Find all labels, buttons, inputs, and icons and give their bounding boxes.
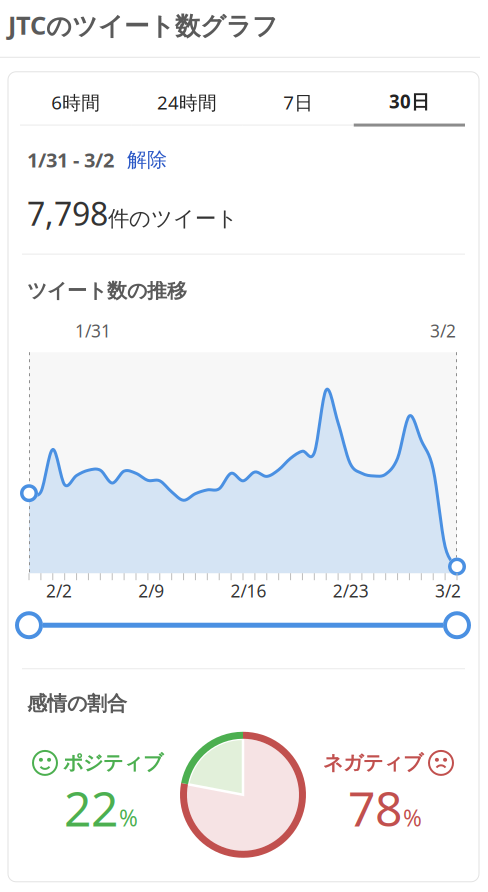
staticText: 3/2 bbox=[430, 319, 456, 342]
button[interactable]: 6時間 bbox=[20, 73, 131, 126]
staticText: JTCのツイート数グラフ bbox=[8, 8, 278, 42]
button[interactable]: 7日 bbox=[242, 73, 354, 126]
staticText: 1/31 bbox=[75, 319, 111, 342]
staticText: 件のツイート bbox=[108, 206, 238, 232]
staticText: 7日 bbox=[283, 90, 313, 115]
staticText: 感情の割合 bbox=[27, 691, 127, 716]
staticText: ネガティブ bbox=[323, 751, 423, 775]
staticText: 1/31 - 3/2 bbox=[27, 147, 114, 173]
staticText: 22 bbox=[64, 776, 118, 840]
staticText: 2/2 bbox=[46, 579, 72, 602]
button[interactable]: Range start bbox=[15, 611, 43, 639]
staticText: 78 bbox=[348, 776, 402, 840]
button[interactable]: 24時間 bbox=[131, 73, 242, 126]
staticText: ポジティブ bbox=[63, 751, 163, 775]
staticText: % bbox=[119, 803, 138, 833]
staticText: ツイート数の推移 bbox=[27, 279, 187, 303]
staticText: 24時間 bbox=[157, 90, 217, 115]
button[interactable]: 30日 bbox=[354, 72, 465, 127]
staticText: 7,798 bbox=[27, 192, 108, 235]
staticText: % bbox=[403, 803, 422, 833]
staticText: 3/2 bbox=[435, 579, 461, 602]
button[interactable]: Range end bbox=[443, 611, 471, 639]
staticText: 2/16 bbox=[230, 579, 266, 602]
staticText: 2/23 bbox=[333, 579, 369, 602]
staticText: 30日 bbox=[389, 89, 430, 114]
staticText: 6時間 bbox=[51, 90, 100, 115]
button[interactable]: 解除 bbox=[127, 148, 167, 172]
staticText: 解除 bbox=[127, 148, 167, 172]
staticText: 2/9 bbox=[138, 579, 164, 602]
